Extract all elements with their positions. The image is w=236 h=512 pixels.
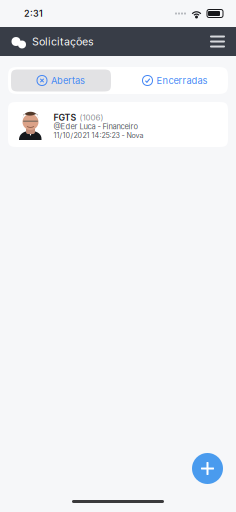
staticText: FGTS bbox=[53, 112, 76, 123]
staticText: Encerradas bbox=[156, 75, 207, 86]
staticText: @Eder Luca - Financeiro bbox=[53, 122, 138, 131]
button[interactable]: Abertas bbox=[11, 69, 111, 91]
staticText: (1006) bbox=[79, 113, 103, 122]
button[interactable]: Menu bbox=[204, 29, 231, 53]
button[interactable]: FGTS bbox=[8, 102, 228, 147]
staticText: Solicitações bbox=[32, 35, 94, 48]
staticText: Abertas bbox=[51, 75, 85, 86]
button[interactable]: Nova solicitação bbox=[192, 453, 223, 484]
staticText: 2:31 bbox=[24, 8, 43, 19]
button[interactable]: Encerradas bbox=[125, 69, 225, 91]
staticText: 11/10/2021 14:25:23 - Nova bbox=[53, 131, 143, 140]
